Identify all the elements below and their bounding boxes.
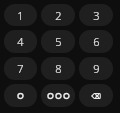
button[interactable]: 3 <box>79 4 113 26</box>
staticText: 1 <box>17 8 24 23</box>
button[interactable]: 4 <box>4 30 37 53</box>
button[interactable]: 8 <box>41 57 75 80</box>
staticText: 5 <box>55 34 62 49</box>
button[interactable]: 5 <box>41 30 75 53</box>
button[interactable]: 6 <box>79 30 113 53</box>
button[interactable]: 7 <box>4 57 37 80</box>
staticText: 6 <box>93 34 100 49</box>
staticText: 4 <box>17 34 24 49</box>
staticText: 7 <box>17 61 24 76</box>
button[interactable]: Backspace <box>79 84 113 107</box>
button[interactable]: More <box>41 84 75 107</box>
button[interactable]: 1 <box>4 4 37 26</box>
staticText: 2 <box>55 8 62 23</box>
staticText: 9 <box>93 61 100 76</box>
button[interactable]: Zero <box>4 84 37 107</box>
button[interactable]: 9 <box>79 57 113 80</box>
button[interactable]: 2 <box>41 4 75 26</box>
staticText: 3 <box>93 8 100 23</box>
staticText: 8 <box>55 61 62 76</box>
